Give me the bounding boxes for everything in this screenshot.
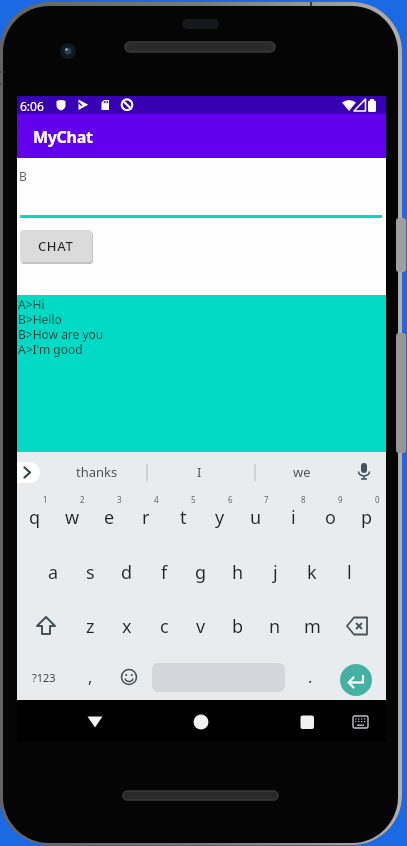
staticText: b <box>232 614 244 639</box>
staticText: . <box>308 666 313 688</box>
button[interactable]: c <box>146 603 182 649</box>
button[interactable]: m <box>294 603 330 649</box>
staticText: B <box>19 168 27 184</box>
staticText: t <box>180 505 187 530</box>
staticText: z <box>86 614 95 639</box>
button[interactable]: i <box>275 494 311 540</box>
staticText: k <box>307 560 317 585</box>
button[interactable] <box>287 702 327 740</box>
button[interactable]: k <box>294 549 330 595</box>
button[interactable]: l <box>331 549 367 595</box>
staticText: MyChat <box>33 126 93 148</box>
staticText: 7 <box>264 494 269 505</box>
staticText: w <box>65 505 80 530</box>
staticText: I <box>197 463 202 481</box>
staticText: g <box>195 560 207 585</box>
staticText: x <box>122 614 132 639</box>
button[interactable]: g <box>183 549 219 595</box>
staticText: 8 <box>301 494 306 505</box>
button[interactable]: n <box>257 603 293 649</box>
staticText: h <box>232 560 244 585</box>
button[interactable]: a <box>35 549 71 595</box>
button[interactable]: I <box>169 452 229 492</box>
staticText: we <box>293 463 311 481</box>
button[interactable]: we <box>272 452 332 492</box>
button[interactable]: r <box>128 494 164 540</box>
staticText: B>Hello <box>18 311 62 327</box>
staticText: 5 <box>191 494 196 505</box>
button[interactable] <box>75 702 115 740</box>
staticText: m <box>304 614 321 639</box>
button[interactable]: v <box>183 603 219 649</box>
staticText: j <box>273 560 278 585</box>
staticText: B>How are you <box>18 326 104 342</box>
staticText: l <box>347 560 352 585</box>
staticText: CHAT <box>38 237 74 255</box>
button[interactable]: s <box>72 549 108 595</box>
staticText: u <box>250 505 262 530</box>
button[interactable]: u <box>238 494 274 540</box>
staticText: thanks <box>76 463 118 481</box>
button[interactable]: thanks <box>67 452 127 492</box>
staticText: o <box>325 505 336 530</box>
staticText: , <box>88 666 93 688</box>
staticText: e <box>104 505 115 530</box>
staticText: 3 <box>117 494 122 505</box>
button[interactable]: e <box>91 494 127 540</box>
staticText: i <box>291 505 296 530</box>
button[interactable]: y <box>202 494 238 540</box>
button[interactable]: j <box>257 549 293 595</box>
staticText: v <box>196 614 206 639</box>
staticText: f <box>161 560 168 585</box>
button[interactable]: b <box>220 603 256 649</box>
button[interactable]: ?123 <box>26 654 62 700</box>
staticText: A>I'm good <box>18 341 83 357</box>
staticText: q <box>29 505 41 530</box>
staticText: 9 <box>338 494 343 505</box>
button[interactable]: w <box>54 494 90 540</box>
staticText: r <box>142 505 150 530</box>
staticText: d <box>121 560 133 585</box>
button[interactable]: . <box>292 654 328 700</box>
staticText: A>Hi <box>18 296 45 312</box>
staticText: 2 <box>80 494 85 505</box>
button[interactable] <box>340 664 372 696</box>
staticText: p <box>361 505 373 530</box>
button[interactable]: q <box>17 494 53 540</box>
button[interactable]: h <box>220 549 256 595</box>
button[interactable]: CHAT <box>20 230 92 262</box>
button[interactable]: d <box>109 549 145 595</box>
staticText: a <box>48 560 59 585</box>
staticText: 0 <box>375 494 380 505</box>
button[interactable]: p <box>349 494 385 540</box>
staticText: s <box>86 560 95 585</box>
staticText: ?123 <box>32 670 56 685</box>
button[interactable]: z <box>72 603 108 649</box>
staticText: 4 <box>154 494 159 505</box>
staticText: 6 <box>228 494 233 505</box>
staticText: c <box>160 614 169 639</box>
staticText: n <box>269 614 281 639</box>
button[interactable]: t <box>165 494 201 540</box>
button[interactable]: x <box>109 603 145 649</box>
button[interactable] <box>181 702 221 740</box>
staticText: 6:06 <box>20 98 44 114</box>
staticText: y <box>215 505 225 530</box>
button[interactable]: , <box>72 654 108 700</box>
button[interactable]: o <box>312 494 348 540</box>
staticText: 1 <box>43 494 48 505</box>
button[interactable]: f <box>146 549 182 595</box>
